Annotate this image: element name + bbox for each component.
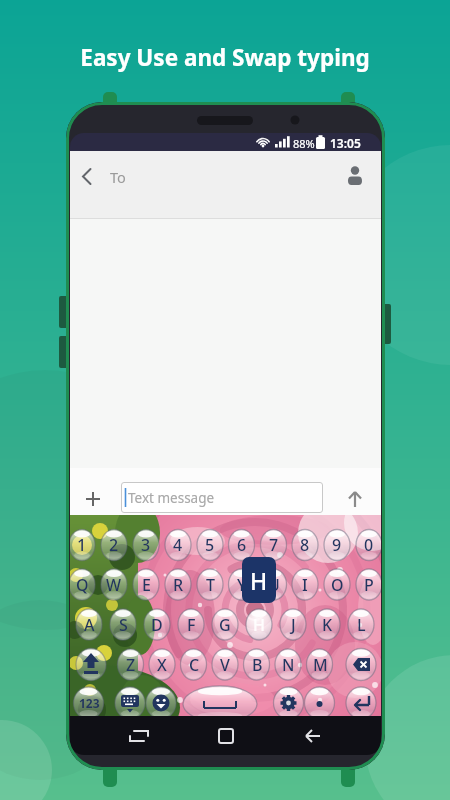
button[interactable]: C [179, 651, 209, 679]
staticText: O [331, 574, 344, 596]
staticText: A [84, 614, 95, 636]
button[interactable]: X [147, 651, 177, 679]
button[interactable]: 7 [259, 531, 289, 559]
button[interactable]: 9 [322, 531, 352, 559]
staticText: C [189, 654, 200, 676]
button[interactable]: R [163, 571, 193, 599]
staticText: Easy Use and Swap typing [0, 42, 450, 73]
staticText: D [151, 614, 163, 636]
button[interactable]: H [242, 557, 276, 603]
staticText: S [119, 614, 128, 636]
staticText: K [322, 614, 333, 636]
button[interactable]: 123 [74, 689, 104, 716]
staticText: 9 [332, 534, 342, 556]
staticText: 8 [300, 534, 310, 556]
button[interactable]: D [142, 611, 172, 639]
staticText: I [302, 574, 308, 596]
staticText: Text message [128, 489, 215, 507]
button[interactable] [70, 716, 173, 755]
button[interactable] [277, 716, 381, 755]
button[interactable]: S [108, 611, 138, 639]
button[interactable]: G [210, 611, 240, 639]
staticText: L [357, 614, 366, 636]
button[interactable]: 4 [163, 531, 193, 559]
button[interactable]: I [290, 571, 320, 599]
staticText: Y [237, 574, 247, 596]
staticText: 7 [269, 534, 279, 556]
staticText: U [268, 574, 280, 596]
button[interactable]: U [259, 571, 289, 599]
staticText: W [106, 574, 122, 596]
staticText: 5 [205, 534, 215, 556]
button[interactable]: 6 [227, 531, 257, 559]
staticText: 2 [109, 534, 119, 556]
button[interactable]: N [273, 651, 303, 679]
button[interactable]: B [242, 651, 272, 679]
button[interactable]: J [278, 611, 308, 639]
staticText: 88% [293, 136, 315, 151]
button[interactable]: K [312, 611, 342, 639]
staticText: R [173, 574, 184, 596]
staticText: 123 [79, 695, 100, 711]
staticText: P [364, 574, 374, 596]
button[interactable]: 5 [195, 531, 225, 559]
button[interactable]: 1 [70, 531, 97, 559]
button[interactable]: A [74, 611, 104, 639]
button[interactable]: E [131, 571, 161, 599]
staticText: To [110, 167, 126, 187]
staticText: H [253, 614, 265, 636]
staticText: H [250, 565, 268, 596]
button[interactable]: T [195, 571, 225, 599]
button[interactable]: To [110, 163, 150, 191]
staticText: 6 [237, 534, 247, 556]
staticText: T [206, 574, 215, 596]
staticText: 4 [173, 534, 183, 556]
button[interactable]: F [176, 611, 206, 639]
staticText: F [187, 614, 196, 636]
button[interactable]: Text message [121, 482, 323, 513]
button[interactable]: O [322, 571, 352, 599]
button[interactable]: 8 [290, 531, 320, 559]
button[interactable]: 3 [131, 531, 161, 559]
staticText: Q [76, 574, 89, 596]
staticText: M [313, 654, 328, 676]
button[interactable]: Z [116, 651, 146, 679]
staticText: Z [126, 654, 136, 676]
staticText: 3 [141, 534, 151, 556]
button[interactable]: L [346, 611, 376, 639]
staticText: E [142, 574, 151, 596]
button[interactable]: 0 [354, 531, 381, 559]
button[interactable]: V [210, 651, 240, 679]
staticText: V [220, 654, 230, 676]
button[interactable]: W [99, 571, 129, 599]
button[interactable]: Y [227, 571, 257, 599]
staticText: B [252, 654, 263, 676]
button[interactable]: 2 [99, 531, 129, 559]
staticText: X [157, 654, 167, 676]
button[interactable]: Q [70, 571, 97, 599]
button[interactable] [173, 716, 277, 755]
staticText: G [219, 614, 231, 636]
button[interactable]: M [305, 651, 335, 679]
staticText: J [291, 614, 296, 636]
staticText: 0 [364, 534, 374, 556]
button[interactable]: P [354, 571, 381, 599]
staticText: 13:05 [330, 135, 361, 151]
staticText: N [282, 654, 295, 676]
button[interactable]: H [244, 611, 274, 639]
staticText: 1 [77, 534, 87, 556]
